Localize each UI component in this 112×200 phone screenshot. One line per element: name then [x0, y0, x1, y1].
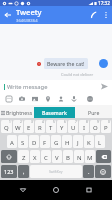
button[interactable]: 3 [24, 120, 34, 133]
button[interactable]: Send [97, 80, 111, 93]
button[interactable]: Gallery [28, 93, 41, 105]
staticText: . [88, 168, 90, 175]
button[interactable]: K [84, 135, 94, 148]
staticText: F [43, 139, 47, 147]
staticText: 2 [20, 120, 22, 124]
button[interactable]: Emoji [95, 165, 111, 178]
button[interactable]: Z [18, 150, 29, 163]
button[interactable]: Basemark [34, 107, 75, 118]
button[interactable]: More [83, 93, 96, 105]
button[interactable]: Back [0, 6, 16, 24]
button[interactable]: Backspace [96, 150, 111, 163]
button[interactable]: , [18, 165, 29, 178]
button[interactable]: 5 [46, 120, 56, 133]
staticText: 4 [42, 120, 44, 124]
button[interactable]: C [41, 150, 51, 163]
staticText: Write message [7, 83, 48, 91]
staticText: 123 [4, 168, 14, 175]
button[interactable]: More options [101, 6, 111, 24]
staticText: H [65, 139, 70, 147]
button[interactable]: 8 [79, 120, 89, 133]
button[interactable]: Location [41, 93, 54, 105]
button[interactable]: Brightness [5, 107, 34, 118]
button[interactable]: Camera [15, 93, 28, 105]
button[interactable]: Pure [75, 107, 112, 118]
staticText: C [44, 154, 48, 162]
button[interactable]: G [51, 135, 61, 148]
staticText: Q [4, 124, 9, 132]
button[interactable]: . [83, 165, 94, 178]
button[interactable]: 7 [68, 120, 78, 133]
button[interactable]: J [73, 135, 83, 148]
staticText: Beware the cat! [47, 60, 85, 67]
staticText: P [104, 124, 108, 132]
button[interactable]: 4 [35, 120, 45, 133]
staticText: O [93, 124, 98, 132]
button[interactable]: M [85, 150, 95, 163]
staticText: 364638364 [16, 18, 38, 24]
staticText: 6 [64, 120, 66, 124]
staticText: U [71, 124, 76, 132]
button[interactable]: D [29, 135, 39, 148]
staticText: 17:32 [98, 0, 110, 6]
button[interactable]: Shift [1, 150, 17, 163]
button[interactable]: Sticker [2, 93, 15, 105]
staticText: W [15, 124, 21, 132]
staticText: 0 [108, 120, 110, 124]
button[interactable]: 1 [1, 120, 12, 133]
button[interactable]: 2 [13, 120, 23, 133]
button[interactable]: Space [30, 165, 82, 178]
button[interactable]: Back [13, 180, 33, 200]
staticText: 9 [97, 120, 99, 124]
staticText: Basemark [42, 109, 67, 116]
button[interactable]: N [74, 150, 84, 163]
staticText: J [77, 139, 79, 147]
button[interactable]: A [7, 135, 17, 148]
staticText: Could not deliver [61, 72, 94, 77]
button[interactable]: H [62, 135, 72, 148]
button[interactable]: 123 [1, 165, 17, 178]
staticText: Tweety [16, 7, 42, 17]
button[interactable]: F [40, 135, 50, 148]
staticText: Z [22, 154, 26, 162]
staticText: 1 [9, 120, 11, 124]
button[interactable]: 6 [57, 120, 67, 133]
staticText: D [32, 139, 37, 147]
button[interactable]: L [95, 135, 105, 148]
staticText: K [87, 139, 91, 147]
button[interactable]: 0 [101, 120, 111, 133]
staticText: A [10, 139, 14, 147]
button[interactable]: Contact [54, 93, 67, 105]
staticText: Pure [88, 109, 100, 116]
button[interactable]: Home [46, 180, 66, 200]
staticText: Y [60, 124, 64, 132]
staticText: , [23, 168, 25, 175]
staticText: SwiftKey [49, 169, 63, 174]
staticText: 5 [53, 120, 55, 124]
staticText: B [66, 154, 70, 162]
staticText: I [83, 124, 86, 132]
button[interactable]: 9 [90, 120, 100, 133]
button[interactable]: Beware the cat! [44, 58, 88, 69]
staticText: T [49, 124, 53, 132]
staticText: G [54, 139, 59, 147]
button[interactable]: Recent apps [79, 180, 99, 200]
button[interactable]: S [18, 135, 28, 148]
staticText: V [55, 154, 59, 162]
staticText: R [38, 124, 42, 132]
button[interactable]: V [52, 150, 62, 163]
button[interactable]: B [63, 150, 73, 163]
staticText: Brightness [6, 109, 33, 116]
staticText: E [27, 124, 31, 132]
staticText: S [21, 139, 25, 147]
staticText: M [87, 154, 93, 162]
staticText: N [77, 154, 82, 162]
button[interactable]: Call [87, 6, 101, 24]
button[interactable]: Menu [0, 107, 5, 118]
staticText: 3 [31, 120, 33, 124]
staticText: 8 [86, 120, 88, 124]
staticText: 7 [75, 120, 77, 124]
button[interactable]: X [30, 150, 40, 163]
button[interactable]: Voice [67, 93, 80, 105]
staticText: X [33, 154, 37, 162]
